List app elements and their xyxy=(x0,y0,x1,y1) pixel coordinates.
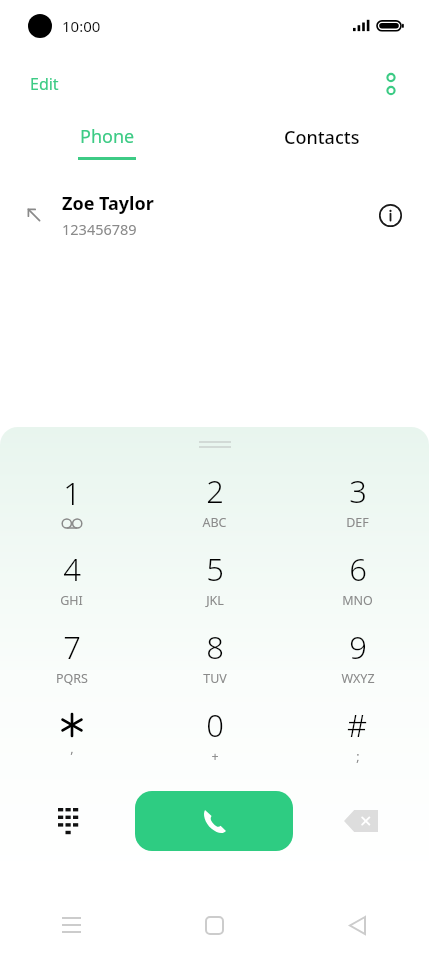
button[interactable]: , xyxy=(0,695,143,773)
staticText: Edit xyxy=(30,73,59,95)
button[interactable]: Edit xyxy=(18,67,71,101)
button[interactable]: Zoe Taylor xyxy=(0,182,429,248)
staticText: Contacts xyxy=(284,126,360,150)
button[interactable]: Delete xyxy=(293,773,429,869)
staticText: 0 xyxy=(206,704,224,746)
button[interactable]: 6 xyxy=(286,539,429,617)
button[interactable]: Contacts xyxy=(266,126,378,159)
button[interactable]: 9 xyxy=(286,617,429,695)
staticText: TUV xyxy=(203,670,227,687)
staticText: 8 xyxy=(206,626,224,668)
staticText: # xyxy=(347,704,368,746)
staticText: ABC xyxy=(202,514,227,531)
button[interactable]: 5 xyxy=(143,539,286,617)
staticText: Zoe Taylor xyxy=(62,191,154,216)
staticText: + xyxy=(211,748,219,765)
button[interactable]: 1 xyxy=(0,461,143,539)
staticText: 5 xyxy=(206,548,224,590)
staticText: DEF xyxy=(346,514,369,531)
button[interactable]: Call xyxy=(135,791,293,851)
staticText: 10:00 xyxy=(62,16,101,36)
button[interactable]: Phone xyxy=(60,122,154,162)
button[interactable]: # xyxy=(286,695,429,773)
button[interactable]: Recents xyxy=(0,896,143,954)
staticText: PQRS xyxy=(56,670,88,687)
staticText: 3 xyxy=(349,470,367,512)
staticText: MNO xyxy=(342,592,373,609)
button[interactable]: Back xyxy=(286,896,429,954)
staticText: 1 xyxy=(63,472,81,514)
button[interactable]: 2 xyxy=(143,461,286,539)
staticText: 123456789 xyxy=(62,219,137,239)
staticText: Phone xyxy=(80,124,135,149)
button[interactable]: 8 xyxy=(143,617,286,695)
staticText: ; xyxy=(356,748,360,765)
staticText: , xyxy=(70,740,74,757)
button[interactable]: 4 xyxy=(0,539,143,617)
staticText: GHI xyxy=(60,592,83,609)
button[interactable]: More options xyxy=(373,66,409,102)
staticText: WXYZ xyxy=(341,670,375,687)
staticText: 6 xyxy=(349,548,367,590)
staticText: 7 xyxy=(63,626,81,668)
button[interactable]: 0 xyxy=(143,695,286,773)
staticText: 2 xyxy=(206,470,224,512)
staticText: 4 xyxy=(63,548,81,590)
button[interactable]: Hide keypad xyxy=(0,773,135,869)
button[interactable]: Call details xyxy=(373,198,407,232)
button[interactable]: Home xyxy=(143,896,286,954)
button[interactable]: 3 xyxy=(286,461,429,539)
staticText: JKL xyxy=(206,592,224,609)
staticText: 9 xyxy=(349,626,367,668)
button[interactable]: 7 xyxy=(0,617,143,695)
